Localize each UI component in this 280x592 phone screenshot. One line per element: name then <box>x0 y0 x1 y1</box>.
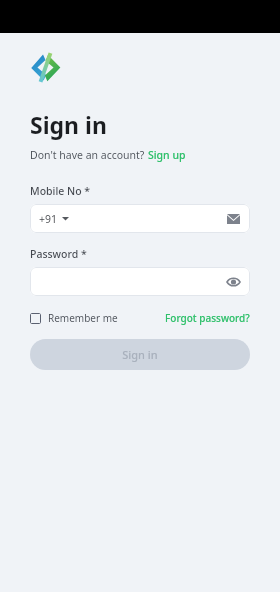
button[interactable]: Forgot password? <box>165 311 250 325</box>
button[interactable]: Sign in <box>30 339 250 370</box>
staticText: Remember me <box>48 311 118 325</box>
button[interactable]: Sign up <box>148 148 186 162</box>
staticText: Sign in <box>30 109 107 140</box>
staticText: Mobile No * <box>30 184 91 198</box>
staticText: Forgot password? <box>165 311 250 325</box>
staticText: +91 <box>39 212 58 226</box>
staticText: Sign up <box>148 148 186 162</box>
button[interactable]: +91 <box>30 204 250 233</box>
staticText: Password * <box>30 247 87 261</box>
staticText: Sign in <box>122 347 158 362</box>
button[interactable]: Email <box>225 211 241 227</box>
button[interactable]: Show password <box>30 267 250 296</box>
button[interactable]: Remember me <box>30 311 118 325</box>
other: App logo <box>30 52 61 83</box>
staticText: Don't have an account? <box>30 148 148 162</box>
button[interactable]: Show password <box>225 274 241 290</box>
